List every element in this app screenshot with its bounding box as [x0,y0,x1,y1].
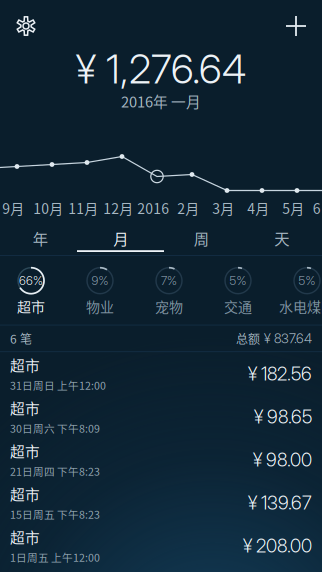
staticText: ¥ 139.67 [248,491,312,514]
staticText: 15日周五 下午8:23 [10,506,100,522]
button[interactable]: 5% [272,264,322,317]
staticText: ¥ 837.64 [264,330,312,346]
staticText: 超市 [10,397,40,418]
button[interactable]: 66% [0,264,65,317]
staticText: 11月 [68,198,98,218]
staticText: ¥ 98.00 [253,448,312,471]
staticText: ¥ 98.65 [254,405,312,428]
staticText: 3月 [212,198,234,218]
staticText: 10月 [33,198,63,218]
staticText: 超市 [10,440,40,461]
staticText: ¥ 182.56 [248,362,312,385]
staticText: 总额 [236,330,260,347]
staticText: 宠物 [155,296,183,316]
button[interactable]: Settings [0,0,52,52]
button[interactable]: 超市 [0,481,322,524]
staticText: 6 笔 [10,330,32,347]
staticText: 5月 [282,198,304,218]
staticText: 30日周六 下午8:09 [10,420,100,436]
button[interactable]: 年 [0,224,80,252]
staticText: 物业 [86,296,114,316]
staticText: 周 [194,227,209,249]
staticText: 66% [19,273,43,288]
staticText: 年 [33,227,48,249]
staticText: 7% [161,273,177,288]
staticText: 4月 [247,198,269,218]
staticText: 2月 [177,198,199,218]
staticText: 12月 [103,198,133,218]
staticText: 9月 [2,198,24,218]
button[interactable]: 超市 [0,438,322,481]
staticText: ¥ 1,276.64 [76,45,246,93]
staticText: 交通 [224,296,252,316]
staticText: 31日周日 上午12:00 [10,377,106,393]
button[interactable]: 周 [161,224,241,252]
staticText: 6 [313,198,321,218]
staticText: 水电煤网 [279,296,322,316]
button[interactable]: 5% [203,264,272,317]
staticText: 天 [274,227,289,249]
staticText: 9% [91,273,108,288]
button[interactable]: 超市 [0,524,322,567]
staticText: 5% [229,273,246,288]
staticText: 超市 [17,296,45,316]
staticText: 超市 [10,354,40,375]
staticText: ¥ 208.00 [243,534,312,557]
staticText: 5% [298,273,315,288]
button[interactable]: 天 [241,224,322,252]
staticText: 21日周四 下午8:23 [10,463,100,479]
button[interactable]: Add transaction [270,0,322,52]
staticText: 2016 [137,198,169,218]
staticText: 月 [113,227,128,249]
button[interactable]: 月 [80,224,161,252]
staticText: 超市 [10,526,40,547]
staticText: 1日周五 上午12:00 [10,549,100,565]
button[interactable]: 超市 [0,395,322,438]
staticText: 2016年 一月 [121,90,201,112]
button[interactable]: 9% [65,264,134,317]
staticText: 超市 [10,483,40,504]
button[interactable]: 7% [134,264,203,317]
button[interactable]: 超市 [0,352,322,395]
